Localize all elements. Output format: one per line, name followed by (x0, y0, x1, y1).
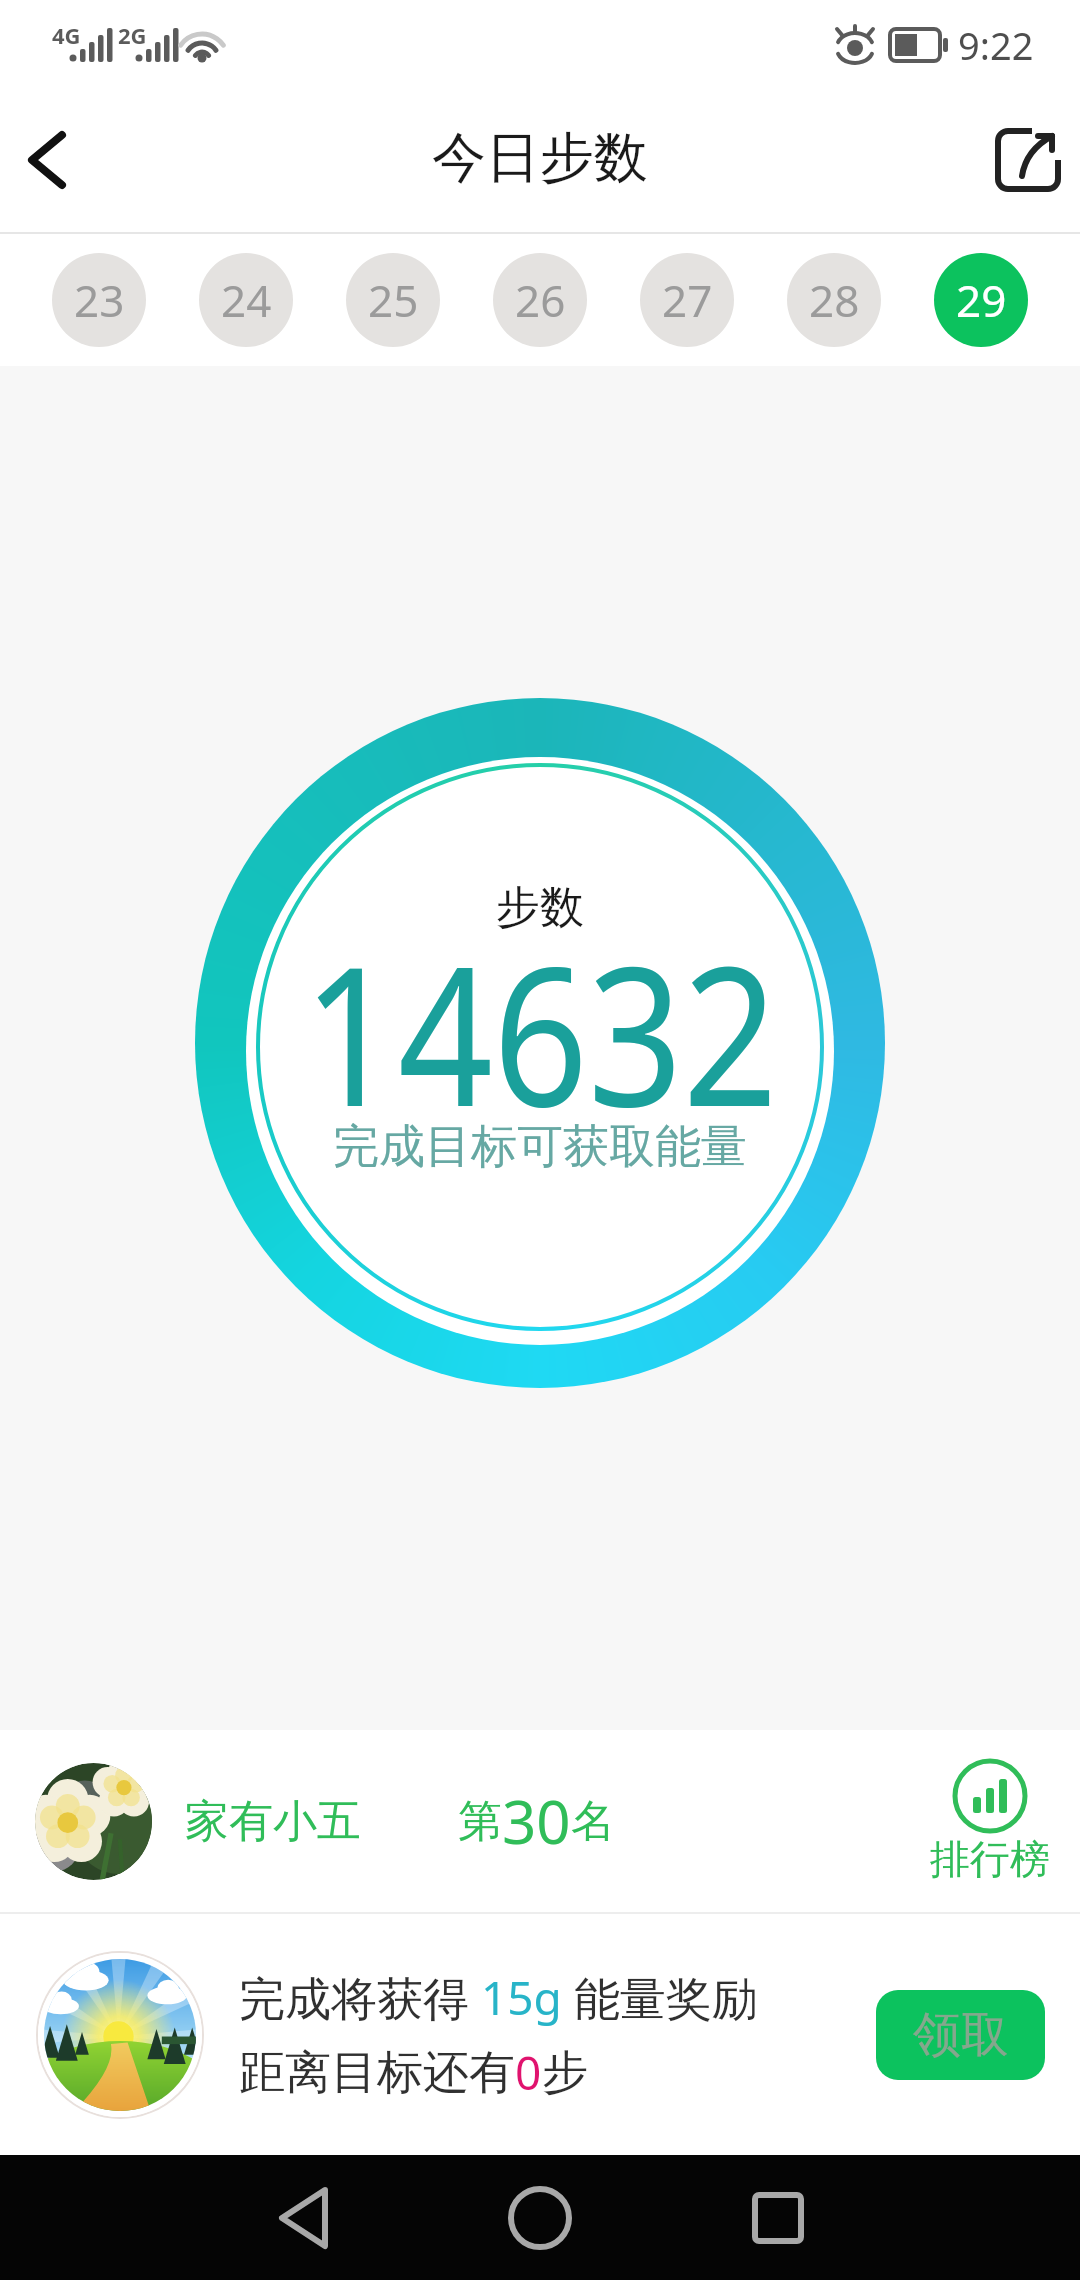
staticText: 步 (542, 2044, 588, 2102)
staticText: 第 (458, 1794, 502, 1849)
staticText: 29 (956, 270, 1007, 330)
staticText: 14632 (303, 901, 778, 1163)
staticText: 完成将获得 (239, 1966, 481, 2029)
staticText: 家有小五 (185, 1794, 361, 1849)
staticText: 能量奖励 (562, 1966, 758, 2029)
staticText: 完成目标可获取能量 (333, 1118, 747, 1176)
button[interactable] (245, 2163, 355, 2273)
staticText: 25 (368, 270, 419, 330)
staticText: 步数 (496, 880, 584, 935)
staticText: 名 (571, 1794, 615, 1849)
staticText: 0 (515, 2041, 542, 2104)
button[interactable]: 25 (346, 253, 440, 347)
button[interactable] (723, 2163, 833, 2273)
button[interactable] (485, 2163, 595, 2273)
button[interactable]: 排行榜 (930, 1758, 1080, 1884)
staticText: 24 (221, 270, 272, 330)
button[interactable]: 28 (787, 253, 881, 347)
staticText: 4G (52, 20, 81, 50)
button[interactable] (0, 115, 90, 205)
button[interactable]: 29 (934, 253, 1028, 347)
button[interactable]: 26 (493, 253, 587, 347)
staticText: 23 (74, 270, 125, 330)
button[interactable] (980, 110, 1080, 210)
button[interactable]: 领取 (876, 1990, 1045, 2080)
staticText: 26 (515, 270, 566, 330)
staticText: 今日步数 (432, 124, 648, 192)
staticText: 2G (118, 20, 147, 50)
button[interactable]: 27 (640, 253, 734, 347)
button[interactable]: 家有小五 (0, 1730, 1080, 1912)
staticText: 距离目标还有 (239, 2044, 515, 2102)
staticText: 领取 (913, 2005, 1009, 2065)
staticText: 27 (662, 270, 713, 330)
staticText: 9:22 (958, 19, 1034, 71)
button[interactable]: 24 (199, 253, 293, 347)
staticText: 15g (481, 1966, 562, 2029)
staticText: 28 (809, 270, 860, 330)
staticText: 排行榜 (930, 1834, 1050, 1884)
button[interactable]: 23 (52, 253, 146, 347)
staticText: 30 (502, 1780, 571, 1862)
